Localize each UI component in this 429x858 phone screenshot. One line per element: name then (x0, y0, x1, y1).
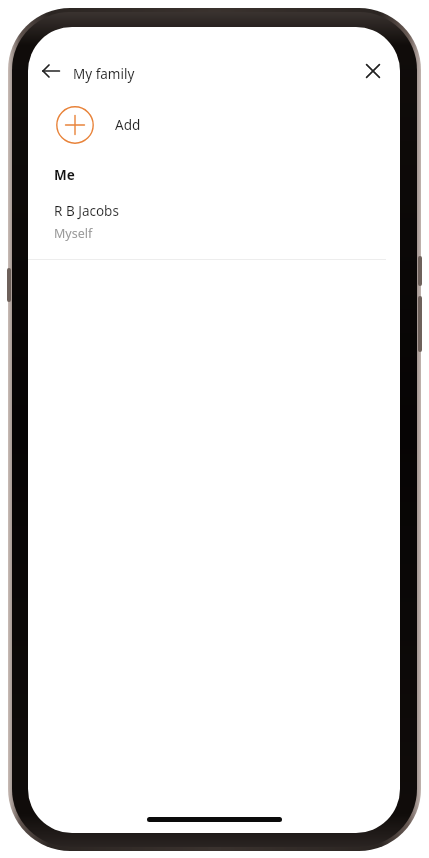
staticText: My family (73, 65, 135, 83)
staticText: R B Jacobs (54, 202, 119, 220)
staticText: Add (115, 116, 141, 134)
staticText: Me (54, 166, 75, 184)
button[interactable]: Back (31, 51, 71, 91)
button[interactable]: Close (353, 51, 393, 91)
staticText: Myself (54, 225, 93, 242)
button[interactable]: R B Jacobs (28, 202, 400, 259)
button[interactable]: Add (28, 97, 400, 153)
